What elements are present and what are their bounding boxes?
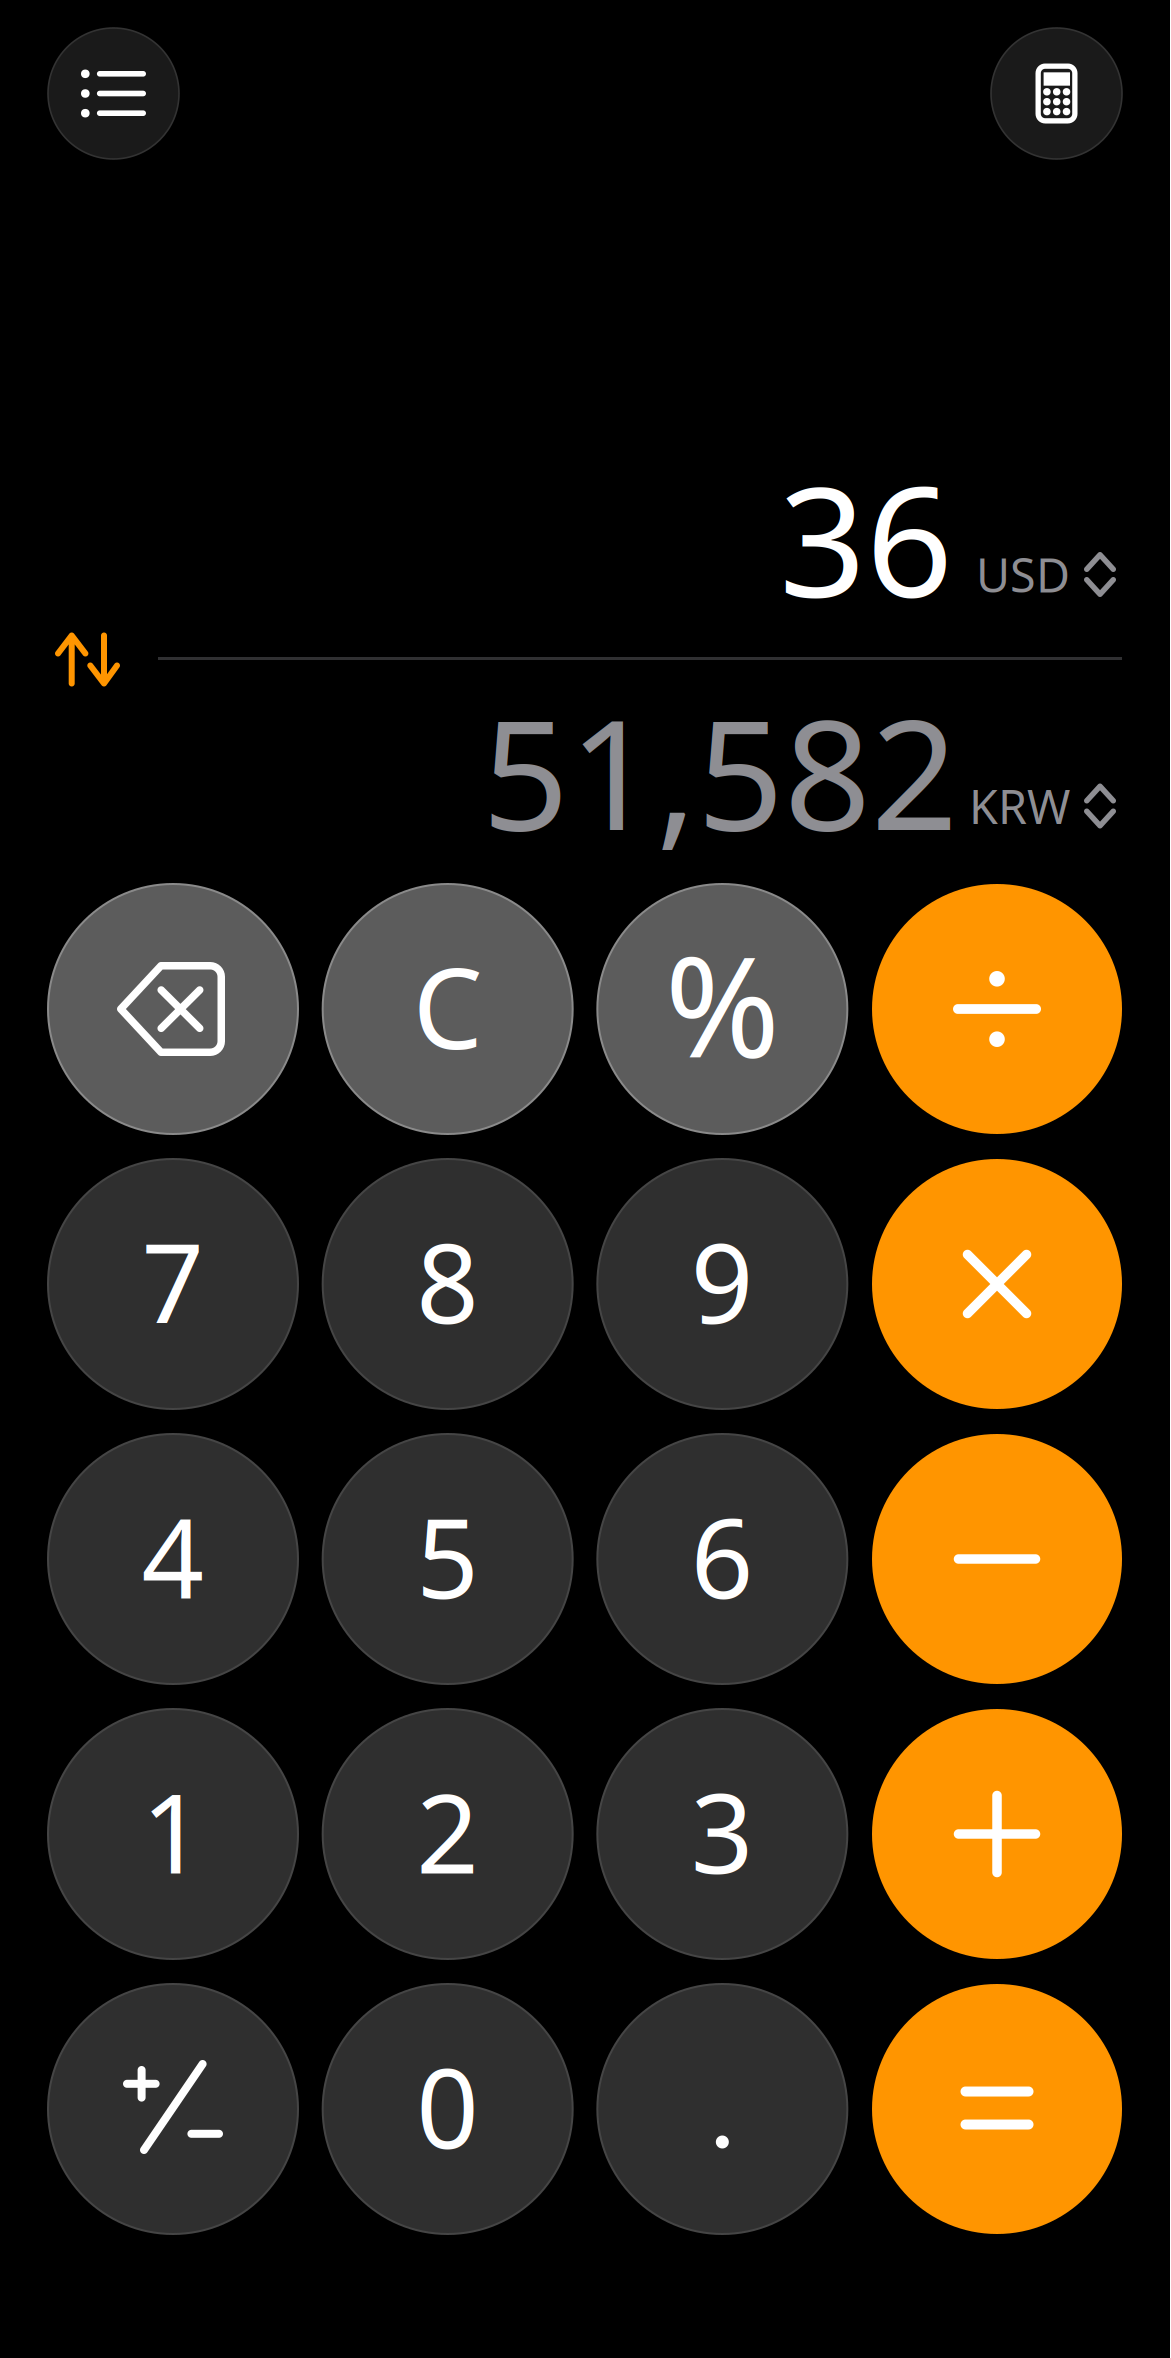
button[interactable]: Decimal point <box>597 1984 847 2234</box>
button[interactable]: Subtract <box>872 1434 1122 1684</box>
button[interactable]: C <box>323 884 573 1134</box>
staticText: 1 <box>141 1758 204 1904</box>
button[interactable]: 6 <box>597 1434 847 1684</box>
staticText: 51,582 <box>482 670 958 872</box>
button[interactable]: Equals <box>872 1984 1122 2234</box>
button[interactable]: 7 <box>48 1159 298 1409</box>
button[interactable]: 5 <box>323 1434 573 1684</box>
staticText: 5 <box>416 1483 479 1629</box>
staticText: 6 <box>691 1483 754 1629</box>
button[interactable]: Plus or minus <box>48 1984 298 2234</box>
button[interactable]: Divide <box>872 884 1122 1134</box>
button[interactable]: Delete <box>48 884 298 1134</box>
button[interactable]: 0 <box>323 1984 573 2234</box>
staticText: % <box>665 912 780 1096</box>
staticText: KRW <box>969 775 1070 837</box>
button[interactable]: 9 <box>597 1159 847 1409</box>
button[interactable]: 8 <box>323 1159 573 1409</box>
staticText: 7 <box>141 1208 204 1354</box>
staticText: C <box>413 932 483 1079</box>
staticText: 9 <box>691 1208 754 1354</box>
staticText: USD <box>976 543 1070 605</box>
button[interactable]: Multiply <box>872 1159 1122 1409</box>
button[interactable]: Select KRW <box>958 771 1122 841</box>
staticText: 2 <box>416 1758 479 1904</box>
button[interactable]: History <box>48 28 179 159</box>
button[interactable]: 2 <box>323 1709 573 1959</box>
button[interactable]: Calculator <box>991 28 1122 159</box>
staticText: 4 <box>141 1483 204 1629</box>
staticText: 36 <box>779 437 953 638</box>
staticText: 8 <box>416 1208 479 1354</box>
button[interactable]: % <box>597 884 847 1134</box>
button[interactable]: Select USD <box>953 539 1122 609</box>
button[interactable]: 4 <box>48 1434 298 1684</box>
button[interactable]: 1 <box>48 1709 298 1959</box>
button[interactable]: 3 <box>597 1709 847 1959</box>
staticText: 0 <box>416 2033 479 2179</box>
staticText: 3 <box>691 1758 754 1904</box>
button[interactable]: Add <box>872 1709 1122 1959</box>
